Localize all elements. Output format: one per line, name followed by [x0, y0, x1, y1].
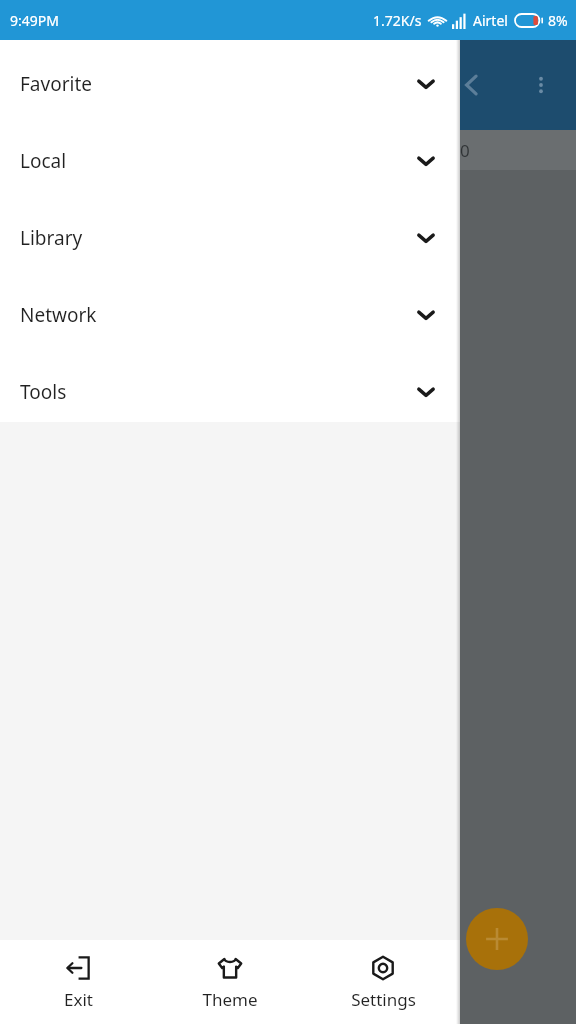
staticText: Settings: [351, 988, 416, 1011]
button[interactable]: Library: [0, 208, 460, 268]
button[interactable]: Network: [0, 285, 460, 345]
staticText: Tools: [20, 379, 67, 405]
staticText: Favorite: [20, 71, 92, 97]
button[interactable]: Local: [0, 131, 460, 191]
staticText: 8%: [548, 11, 568, 30]
button[interactable]: Exit: [3, 940, 153, 1024]
staticText: Library: [20, 225, 83, 251]
button[interactable]: Favorite: [0, 54, 460, 114]
staticText: Local: [20, 148, 67, 174]
button[interactable]: More options: [528, 72, 554, 98]
staticText: 1.72K/s: [373, 11, 422, 30]
button[interactable]: Theme: [155, 940, 305, 1024]
button[interactable]: Add: [466, 908, 528, 970]
staticText: 9:49PM: [10, 11, 59, 30]
staticText: Theme: [202, 988, 258, 1011]
staticText: Exit: [64, 988, 93, 1011]
button[interactable]: Back: [455, 68, 489, 102]
button[interactable]: Tools: [0, 362, 460, 422]
staticText: Airtel: [473, 11, 508, 30]
staticText: Network: [20, 302, 97, 328]
button[interactable]: Settings: [308, 940, 458, 1024]
staticText: 0: [460, 139, 470, 162]
